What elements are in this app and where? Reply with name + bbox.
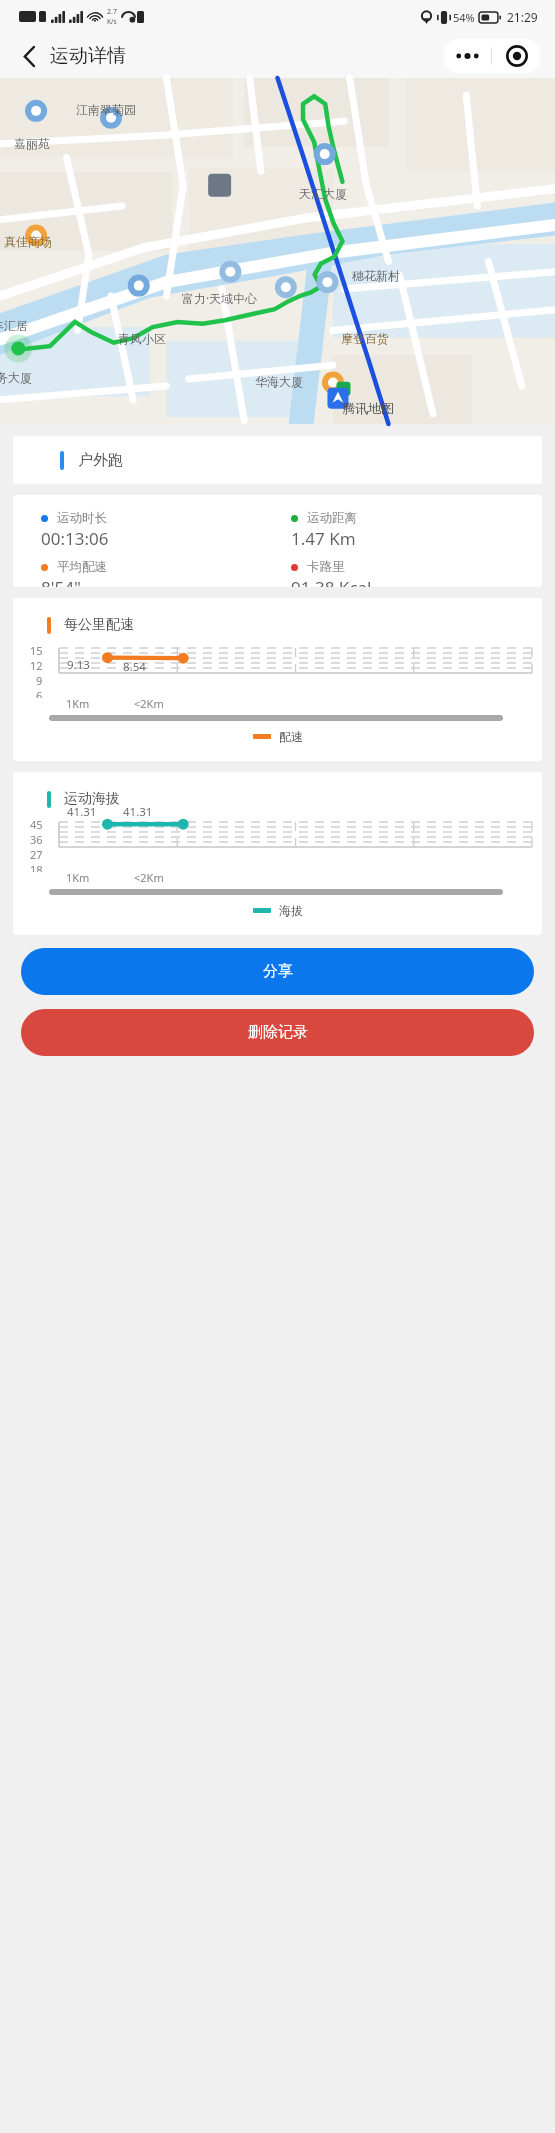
staticText: 富力·天域中心 <box>182 290 258 306</box>
staticText: 配速 <box>279 729 303 744</box>
button[interactable]: 返回 <box>9 36 49 76</box>
staticText: 嘉丽苑 <box>14 136 50 151</box>
staticText: 41.31 <box>123 804 153 820</box>
staticText: 每公里配速 <box>64 616 134 634</box>
button[interactable]: 更多 <box>443 39 491 73</box>
staticText: 运动详情 <box>50 44 126 68</box>
staticText: 45 <box>30 817 43 832</box>
staticText: 青凤小区 <box>118 331 166 346</box>
button[interactable]: 每公里配速 <box>13 598 542 761</box>
button[interactable]: 户外跑 <box>13 436 542 484</box>
staticText: 6 <box>36 688 43 698</box>
staticText: 户外跑 <box>78 451 123 470</box>
staticText: 1.47 Km <box>291 527 356 550</box>
staticText: 9 <box>36 673 43 688</box>
staticText: 18 <box>30 862 43 872</box>
staticText: 穗花新村 <box>352 268 400 283</box>
staticText: 运动距离 <box>307 510 357 526</box>
staticText: 8.54 <box>123 659 146 675</box>
staticText: 54% <box>453 10 475 25</box>
button[interactable]: 关闭 <box>492 39 541 73</box>
staticText: 丰汇居 <box>0 318 28 333</box>
staticText: 真佳商场 <box>4 234 52 249</box>
button[interactable]: 运动海拔 <box>13 772 542 935</box>
staticText: 卡路里 <box>307 559 345 575</box>
staticText: 2.7 <box>107 7 117 17</box>
staticText: 务大厦 <box>0 370 32 385</box>
staticText: <2Km <box>134 870 164 885</box>
staticText: 天汇大厦 <box>299 186 347 201</box>
staticText: 12 <box>30 658 43 673</box>
staticText: 海拔 <box>279 903 303 918</box>
staticText: 运动海拔 <box>64 790 120 808</box>
staticText: <2Km <box>134 696 164 711</box>
staticText: 1Km <box>66 870 90 885</box>
staticText: 删除记录 <box>248 1023 308 1042</box>
staticText: 41.31 <box>67 804 97 820</box>
staticText: 摩登百货 <box>341 331 389 346</box>
staticText: K/s <box>107 17 117 26</box>
staticText: 21:29 <box>507 9 538 25</box>
staticText: 平均配速 <box>57 559 107 575</box>
button[interactable]: 分享 <box>21 948 534 995</box>
button[interactable]: 删除记录 <box>21 1009 534 1056</box>
staticText: 36 <box>30 832 43 847</box>
staticText: 00:13:06 <box>41 527 109 550</box>
staticText: 江南翠菊园 <box>76 102 136 117</box>
staticText: 分享 <box>263 962 293 981</box>
staticText: 15 <box>30 643 43 658</box>
button[interactable]: 运动时长 <box>13 495 542 587</box>
staticText: 91.38 Kcal <box>291 576 372 587</box>
staticText: 8'54" <box>41 576 81 587</box>
staticText: 华海大厦 <box>255 374 303 389</box>
staticText: 9.13 <box>67 657 90 673</box>
staticText: 27 <box>30 847 43 862</box>
staticText: 腾讯地图 <box>342 400 394 416</box>
staticText: 运动时长 <box>57 510 107 526</box>
staticText: 1Km <box>66 696 90 711</box>
